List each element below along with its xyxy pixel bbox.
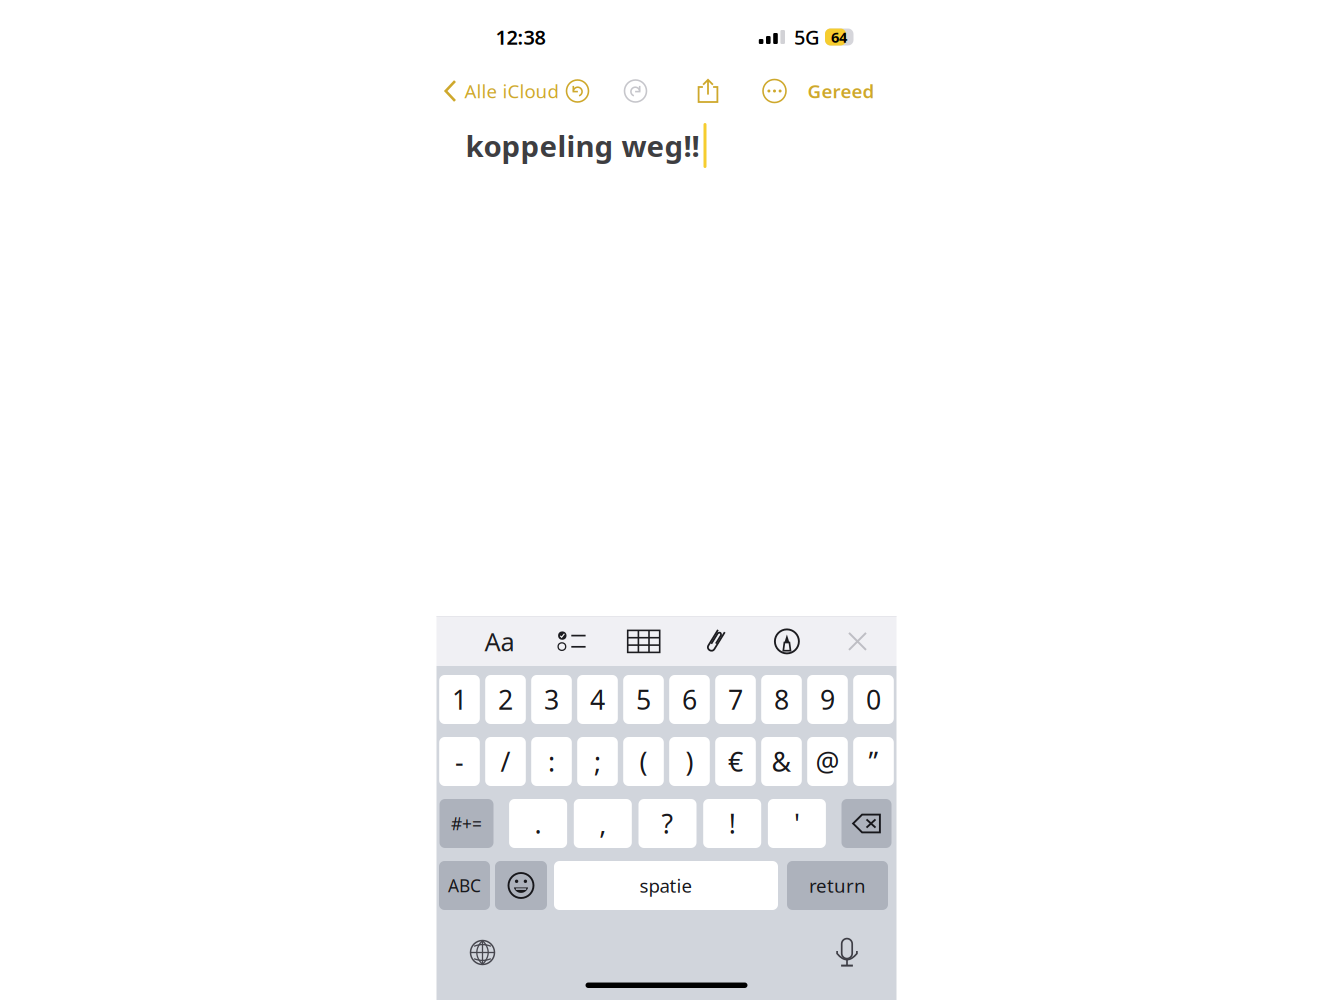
staticText: ) xyxy=(685,744,693,779)
button[interactable]: 7 xyxy=(715,675,756,724)
button[interactable]: Markup xyxy=(761,617,813,665)
staticText: 5G xyxy=(794,24,820,50)
button[interactable]: ! xyxy=(703,799,761,848)
staticText: ! xyxy=(729,806,736,841)
staticText: ABC xyxy=(448,874,481,897)
staticText: & xyxy=(771,744,791,779)
staticText: 7 xyxy=(728,682,743,717)
button[interactable]: Delete xyxy=(841,799,891,848)
staticText: € xyxy=(728,744,743,779)
button[interactable]: @ xyxy=(807,737,848,786)
button[interactable]: More xyxy=(757,71,791,111)
staticText: 9 xyxy=(820,682,835,717)
button[interactable]: Dictate xyxy=(835,938,858,967)
staticText: 1 xyxy=(452,682,467,717)
button[interactable]: & xyxy=(761,737,802,786)
button[interactable]: #+= xyxy=(439,799,493,848)
button[interactable]: spatie xyxy=(554,861,778,910)
staticText: 64 xyxy=(831,27,847,47)
button[interactable]: 0 xyxy=(853,675,894,724)
button[interactable]: Gereed xyxy=(799,71,882,111)
staticText: ” xyxy=(868,744,878,779)
staticText: 8 xyxy=(774,682,789,717)
staticText: : xyxy=(548,744,555,779)
button[interactable]: Undo xyxy=(560,71,594,111)
staticText: spatie xyxy=(639,873,692,898)
staticText: 0 xyxy=(866,682,881,717)
button[interactable]: Aa xyxy=(472,617,526,665)
button[interactable]: 8 xyxy=(761,675,802,724)
staticText: 3 xyxy=(544,682,559,717)
button[interactable]: 6 xyxy=(669,675,710,724)
button[interactable]: ABC xyxy=(439,861,490,910)
button[interactable]: Table xyxy=(618,617,670,665)
staticText: return xyxy=(809,873,866,898)
button[interactable]: 4 xyxy=(577,675,618,724)
staticText: #+= xyxy=(451,812,482,835)
button[interactable]: 5 xyxy=(623,675,664,724)
staticText: 12:38 xyxy=(495,24,545,50)
staticText: , xyxy=(599,806,606,841)
button[interactable]: - xyxy=(439,737,480,786)
button[interactable]: Checklist xyxy=(546,617,598,665)
button[interactable]: ( xyxy=(623,737,664,786)
staticText: ? xyxy=(661,806,673,841)
button[interactable]: return xyxy=(787,861,888,910)
button[interactable]: 3 xyxy=(531,675,572,724)
staticText: ' xyxy=(794,806,800,841)
button[interactable]: . xyxy=(509,799,567,848)
button[interactable]: , xyxy=(574,799,632,848)
button[interactable]: ; xyxy=(577,737,618,786)
button[interactable]: 2 xyxy=(485,675,526,724)
staticText: 4 xyxy=(590,682,605,717)
staticText: @ xyxy=(815,744,839,779)
button[interactable]: / xyxy=(485,737,526,786)
button[interactable]: Share xyxy=(690,71,726,111)
staticText: Alle iCloud xyxy=(464,79,558,103)
button[interactable]: Alle iCloud xyxy=(436,71,560,111)
staticText: / xyxy=(500,744,510,779)
button[interactable]: : xyxy=(531,737,572,786)
staticText: koppeling weg!! xyxy=(465,126,699,165)
button[interactable]: € xyxy=(715,737,756,786)
button[interactable]: 1 xyxy=(439,675,480,724)
button[interactable]: Close keyboard xyxy=(832,617,882,665)
button[interactable]: Attach xyxy=(689,617,741,665)
staticText: 2 xyxy=(498,682,513,717)
staticText: - xyxy=(455,744,464,779)
staticText: ( xyxy=(639,744,647,779)
button[interactable]: Emoji xyxy=(495,861,547,910)
staticText: . xyxy=(535,806,542,841)
button[interactable]: ) xyxy=(669,737,710,786)
button[interactable]: ” xyxy=(853,737,894,786)
staticText: Aa xyxy=(484,625,514,658)
staticText: 5 xyxy=(636,682,651,717)
button[interactable]: 9 xyxy=(807,675,848,724)
staticText: 6 xyxy=(682,682,697,717)
button[interactable]: ? xyxy=(638,799,696,848)
button[interactable]: Redo xyxy=(618,71,652,111)
staticText: Gereed xyxy=(807,79,874,103)
button[interactable]: Next keyboard xyxy=(469,939,495,965)
staticText: ; xyxy=(594,744,601,779)
button[interactable]: ' xyxy=(768,799,826,848)
